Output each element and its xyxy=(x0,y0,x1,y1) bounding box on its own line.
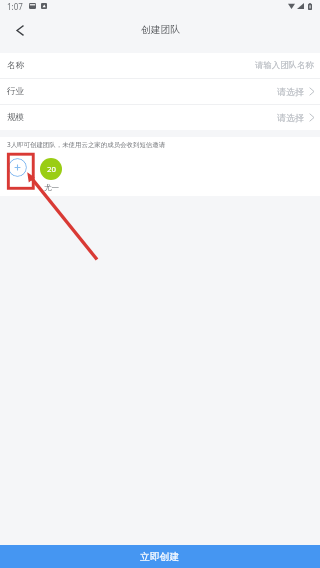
staticText: 立即创建 xyxy=(140,551,180,563)
button[interactable]: 名称 xyxy=(0,53,320,78)
staticText: 20 xyxy=(47,164,56,175)
staticText: 规模 xyxy=(7,112,25,123)
button[interactable]: 返回 xyxy=(7,11,33,49)
staticText: 名称 xyxy=(7,60,25,71)
button[interactable]: 20 xyxy=(40,158,62,180)
staticText: 请选择 xyxy=(277,112,304,123)
button[interactable]: 立即创建 xyxy=(0,545,320,568)
staticText: 请选择 xyxy=(277,86,304,97)
button[interactable]: 行业 xyxy=(0,79,320,104)
staticText: 尤一 xyxy=(44,183,60,193)
button[interactable]: 添加成员 xyxy=(8,158,27,177)
staticText: 创建团队 xyxy=(141,24,180,36)
button[interactable]: 规模 xyxy=(0,105,320,130)
staticText: 1:07 xyxy=(7,1,23,12)
staticText: 3人即可创建团队，未使用云之家的成员会收到短信邀请 xyxy=(7,140,166,149)
staticText: 请输入团队名称 xyxy=(255,60,314,71)
staticText: 行业 xyxy=(7,86,25,97)
